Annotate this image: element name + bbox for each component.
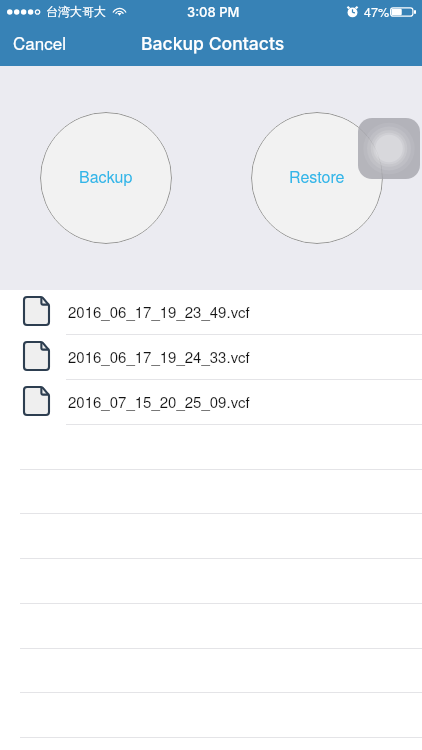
button[interactable]: 2016_07_15_20_25_09.vcf: [0, 380, 422, 425]
staticText: 2016_06_17_19_24_33.vcf: [68, 346, 250, 367]
staticText: 2016_06_17_19_23_49.vcf: [68, 301, 250, 322]
button[interactable]: AssistiveTouch: [358, 118, 420, 179]
staticText: 47%: [364, 3, 390, 21]
button[interactable]: 2016_06_17_19_24_33.vcf: [0, 335, 422, 380]
staticText: 3:08 PM: [187, 4, 240, 20]
staticText: Backup Contacts: [141, 33, 285, 54]
staticText: 台湾大哥大: [46, 4, 106, 19]
staticText: 2016_07_15_20_25_09.vcf: [68, 391, 250, 412]
button[interactable]: 2016_06_17_19_23_49.vcf: [0, 290, 422, 335]
button[interactable]: Restore: [251, 112, 383, 244]
button[interactable]: Cancel: [0, 23, 78, 61]
staticText: Cancel: [13, 30, 66, 54]
staticText: Restore: [289, 165, 345, 188]
button[interactable]: Backup: [40, 112, 172, 244]
staticText: Backup: [79, 165, 133, 188]
